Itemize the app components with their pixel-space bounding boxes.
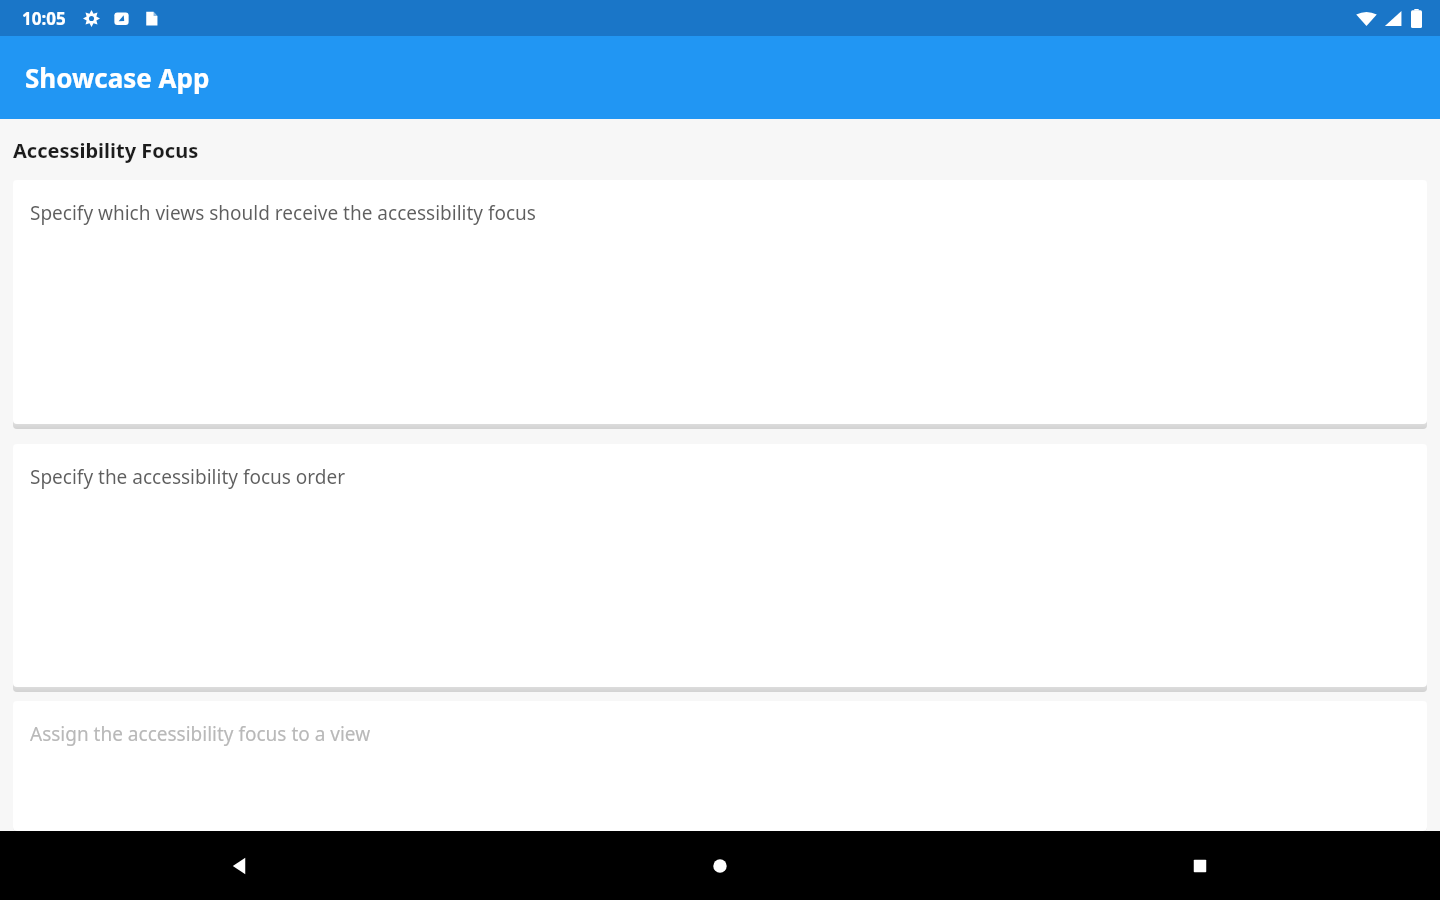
- button[interactable]: Assign the accessibility focus to a view: [13, 701, 1427, 831]
- button[interactable]: Specify which views should receive the a…: [13, 180, 1427, 424]
- staticText: 10:05: [22, 7, 66, 30]
- staticText: Assign the accessibility focus to a view: [30, 721, 371, 747]
- button[interactable]: Recent apps: [960, 831, 1440, 900]
- button[interactable]: Specify the accessibility focus order: [13, 444, 1427, 687]
- button[interactable]: Back: [0, 831, 480, 900]
- staticText: Specify which views should receive the a…: [30, 200, 536, 226]
- staticText: Showcase App: [25, 60, 210, 95]
- staticText: Specify the accessibility focus order: [30, 464, 346, 490]
- staticText: Accessibility Focus: [13, 137, 199, 164]
- button[interactable]: Home: [480, 831, 960, 900]
